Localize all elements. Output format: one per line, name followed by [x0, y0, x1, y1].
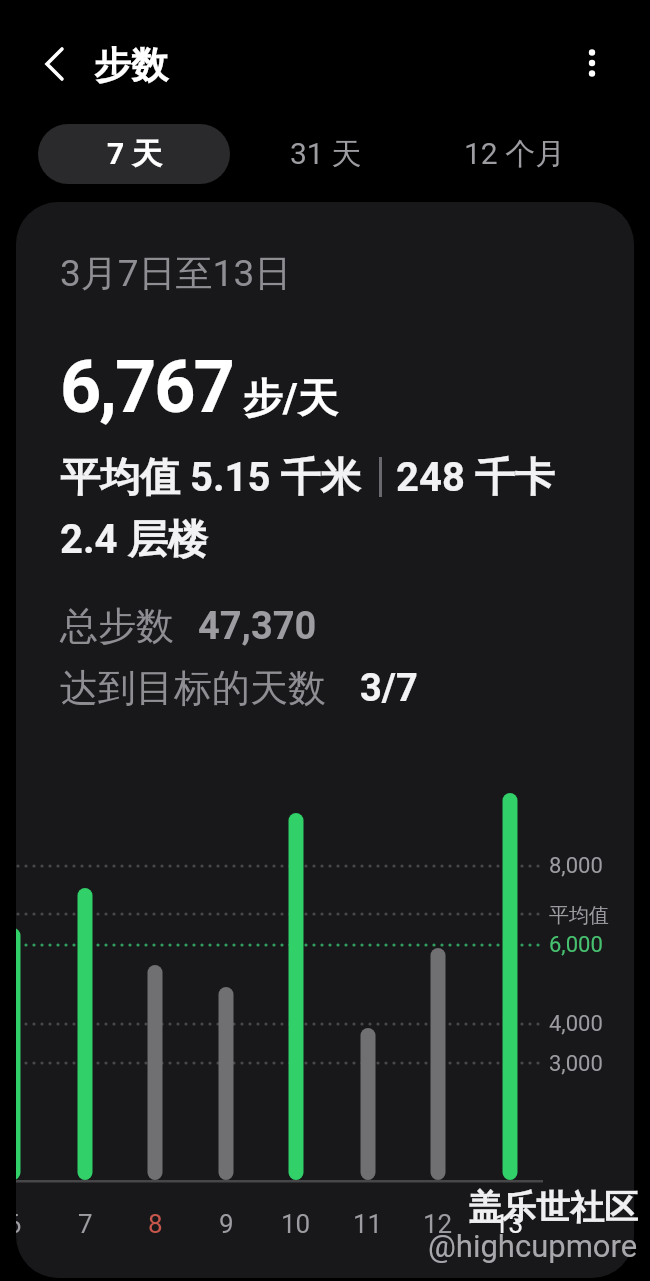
staticText: 总步数 [60, 602, 174, 650]
staticText: 平均值 5.15 千米 [60, 452, 361, 502]
staticText: 6,767 步/天 [60, 345, 338, 429]
staticText: 12 个月 [464, 135, 566, 173]
button[interactable]: 7 天 [38, 124, 230, 184]
button[interactable] [572, 43, 612, 83]
staticText: 3月7日至13日 [60, 250, 292, 297]
staticText: 31 天 [290, 135, 362, 173]
staticText: 3/7 [360, 666, 418, 711]
staticText: 8 [148, 1209, 163, 1239]
button[interactable]: 31 天 [262, 124, 390, 184]
staticText: 6 [16, 1209, 22, 1239]
staticText: 达到目标的天数 [60, 664, 326, 712]
staticText: 12 [423, 1209, 453, 1239]
staticText: 4,000 [549, 1011, 603, 1037]
staticText: 9 [219, 1209, 234, 1239]
staticText: 3,000 [549, 1051, 603, 1077]
staticText: 6,000 [549, 932, 603, 958]
staticText: 248 千卡 [396, 452, 555, 502]
staticText: 10 [281, 1209, 311, 1239]
staticText: 步数 [94, 42, 168, 89]
staticText: @highcupmore [428, 1228, 638, 1264]
staticText: 47,370 [198, 604, 317, 649]
staticText: 平均值 [549, 903, 609, 928]
staticText: 8,000 [549, 853, 603, 879]
staticText: 7 天 [107, 135, 162, 173]
staticText: 7 [78, 1209, 93, 1239]
staticText: 盖乐世社区 [468, 1186, 638, 1229]
button[interactable]: 12 个月 [440, 124, 590, 184]
staticText: 11 [353, 1209, 383, 1239]
staticText: 13 [494, 1209, 524, 1239]
staticText: 2.4 层楼 [60, 514, 208, 564]
button[interactable] [34, 44, 74, 84]
